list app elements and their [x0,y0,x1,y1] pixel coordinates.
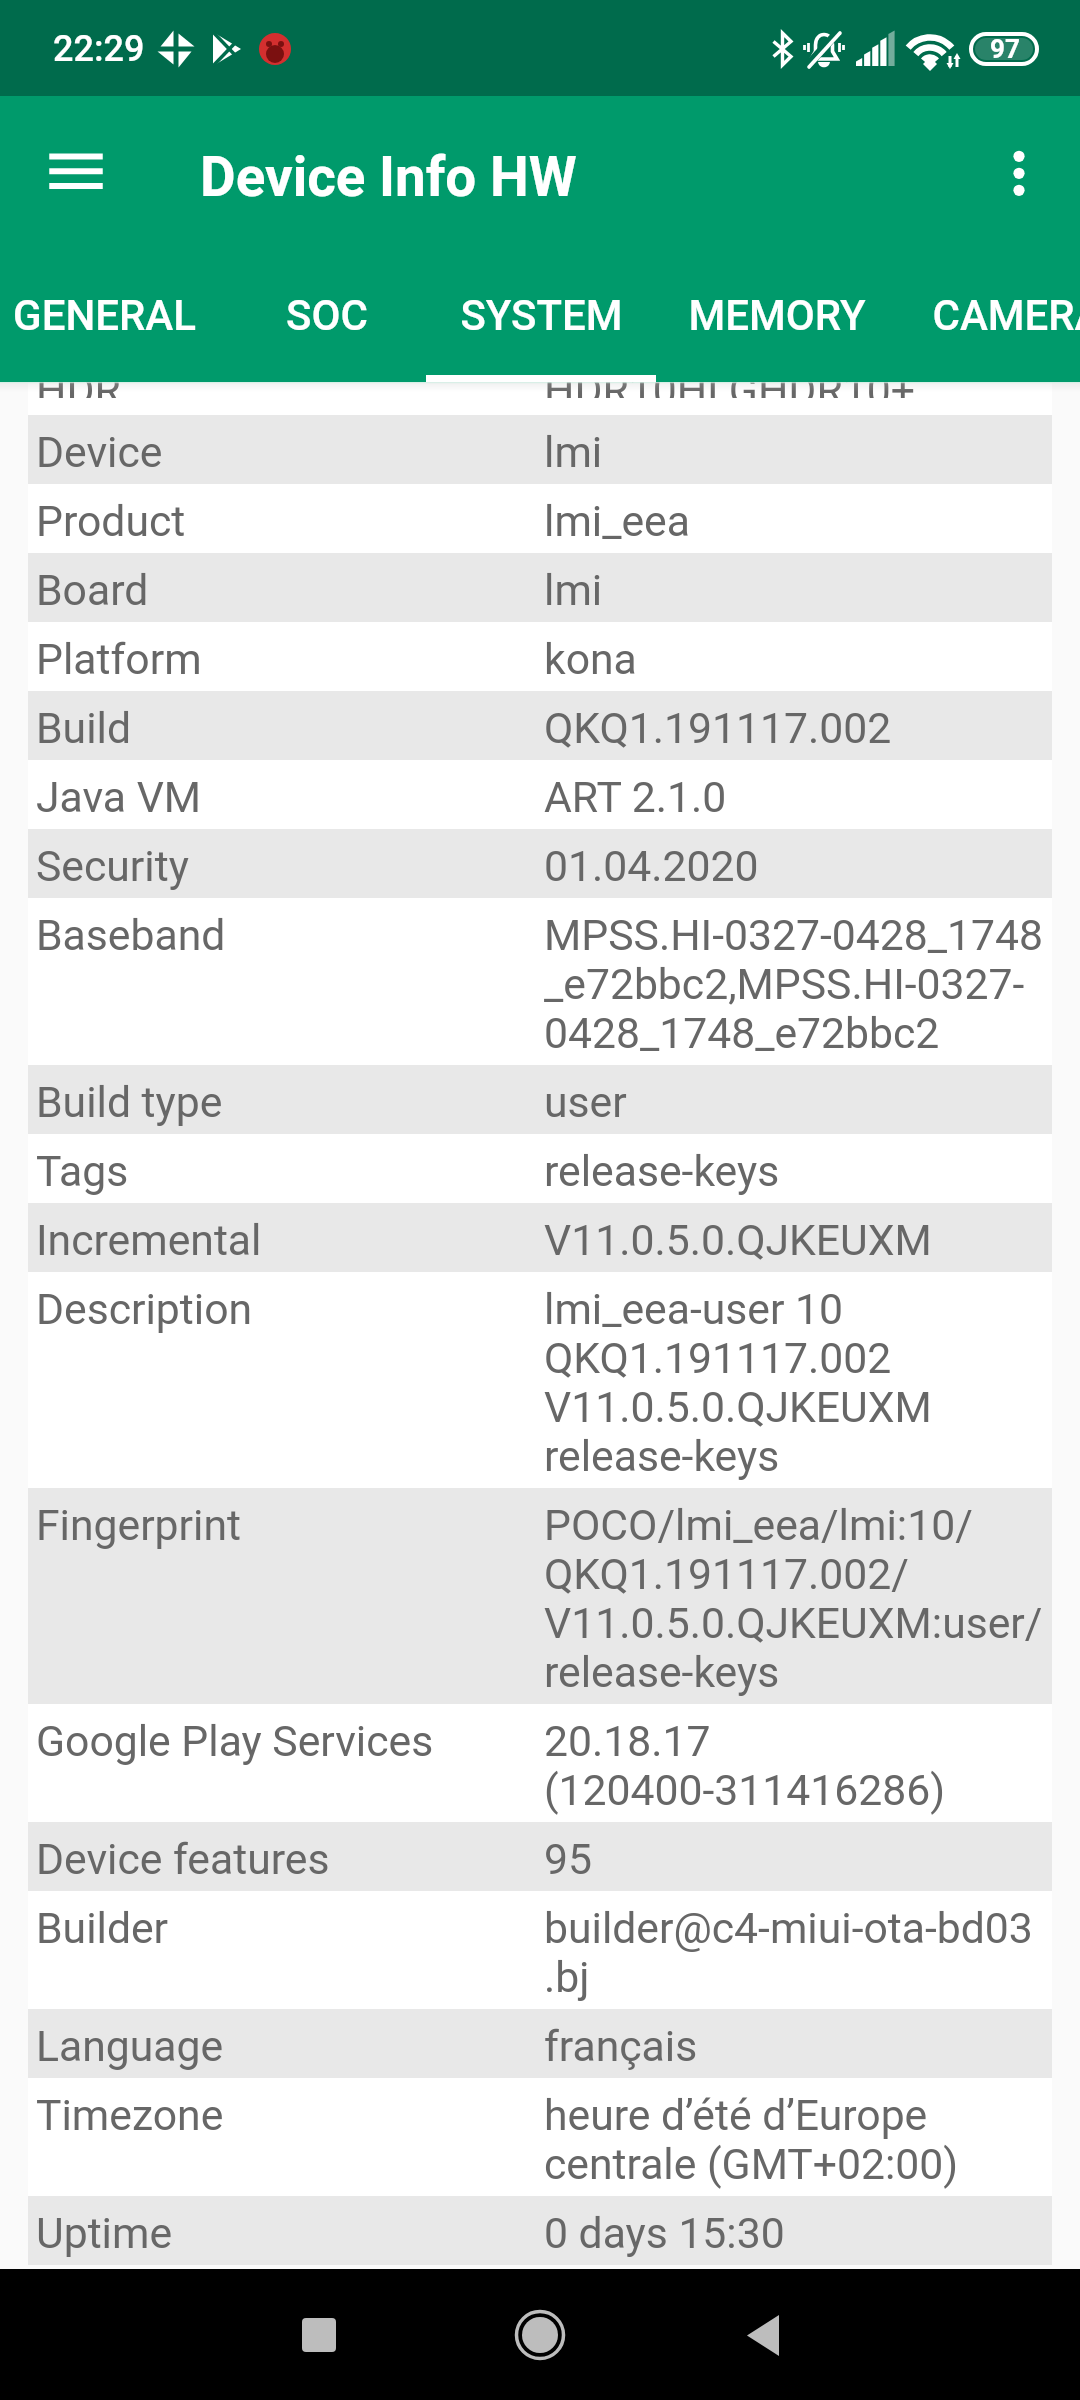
button[interactable]: More options [971,128,1067,224]
staticText: builder@c4-miui-ota-bd03 [544,1903,1033,1953]
staticText: SYSTEM [460,291,623,340]
staticText: Description [36,1284,253,1334]
staticText: V11.0.5.0.QJKEUXM [544,1382,932,1432]
button[interactable]: CAMERA [902,255,1080,382]
staticText: Build [36,703,131,753]
staticText: kona [544,634,637,684]
button[interactable]: MEMORY [652,255,902,382]
staticText: Fingerprint [36,1500,241,1550]
button[interactable]: Recent apps [271,2287,367,2383]
staticText: .bj [544,1952,590,2002]
button[interactable]: Builder [28,1891,1052,2009]
staticText: SOC [286,291,368,340]
button[interactable]: Description [28,1272,1052,1488]
staticText: HDR [36,382,121,398]
button[interactable]: Board [28,553,1052,622]
button[interactable]: SOC [219,255,435,382]
staticText: Google Play Services [36,1716,434,1766]
button[interactable]: Home [492,2287,588,2383]
button[interactable]: Java VM [28,760,1052,829]
staticText: Platform [36,634,202,684]
staticText: MPSS.HI-0327-0428_1748 [544,910,1043,960]
staticText: lmi [544,565,603,615]
staticText: lmi_eea [544,496,690,546]
button[interactable]: Timezone [28,2078,1052,2196]
button[interactable]: GENERAL [0,255,214,382]
button[interactable]: Device features [28,1822,1052,1891]
button[interactable]: Uptime [28,2196,1052,2265]
staticText: Tags [36,1146,129,1196]
button[interactable]: Back [715,2287,811,2383]
staticText: Device [36,427,163,477]
staticText: release-keys [544,1431,780,1481]
staticText: QKQ1.191117.002 [544,703,892,753]
button[interactable]: Open navigation drawer [26,126,126,226]
staticText: 97 [990,34,1020,64]
staticText: V11.0.5.0.QJKEUXM [544,1215,932,1265]
button[interactable]: Device [28,415,1052,484]
staticText: Device Info HW [200,145,577,209]
staticText: QKQ1.191117.002 [544,1333,892,1383]
staticText: Uptime [36,2208,173,2258]
staticText: 22:29 [53,28,145,70]
staticText: MEMORY [688,291,866,340]
staticText: Security [36,841,189,891]
button[interactable]: Incremental [28,1203,1052,1272]
staticText: ART 2.1.0 [544,772,727,822]
staticText: Language [36,2021,224,2071]
staticText: Builder [36,1903,169,1953]
button[interactable]: Language [28,2009,1052,2078]
staticText: heure d’été d’Europe [544,2090,928,2140]
staticText: release-keys [544,1146,780,1196]
button[interactable]: Build type [28,1065,1052,1134]
button[interactable]: Product [28,484,1052,553]
staticText: CAMERA [932,291,1080,340]
staticText: français [544,2021,698,2071]
staticText: GENERAL [13,291,196,340]
staticText: Board [36,565,149,615]
staticText: Java VM [36,772,202,822]
staticText: HDR10HLGHDR10+ [544,382,915,398]
staticText: Product [36,496,186,546]
staticText: user [544,1077,627,1127]
staticText: 0428_1748_e72bbc2 [544,1008,940,1058]
button[interactable]: Tags [28,1134,1052,1203]
staticText: Device features [36,1834,330,1884]
staticText: lmi_eea-user 10 [544,1284,843,1334]
button[interactable]: Security [28,829,1052,898]
staticText: 01.04.2020 [544,841,759,891]
button[interactable]: Build [28,691,1052,760]
staticText: lmi [544,427,603,477]
staticText: V11.0.5.0.QJKEUXM:user/ [544,1598,1043,1648]
button[interactable]: Platform [28,622,1052,691]
button[interactable]: Fingerprint [28,1488,1052,1704]
button[interactable]: Baseband [28,898,1052,1065]
staticText: Build type [36,1077,223,1127]
staticText: _e72bbc2,MPSS.HI-0327- [544,959,1025,1009]
staticText: 20.18.17 [544,1716,711,1766]
staticText: Incremental [36,1215,262,1265]
staticText: 95 [544,1834,592,1884]
staticText: release-keys [544,1647,780,1697]
staticText: (120400-311416286) [544,1765,946,1815]
staticText: Baseband [36,910,226,960]
staticText: 0 days 15:30 [544,2208,785,2258]
staticText: Timezone [36,2090,224,2140]
button[interactable]: Google Play Services [28,1704,1052,1822]
button[interactable]: SYSTEM [426,255,656,382]
staticText: centrale (GMT+02:00) [544,2139,959,2189]
staticText: QKQ1.191117.002/ [544,1549,909,1599]
button[interactable]: HDR [28,382,1052,415]
staticText: POCO/lmi_eea/lmi:10/ [544,1500,973,1550]
